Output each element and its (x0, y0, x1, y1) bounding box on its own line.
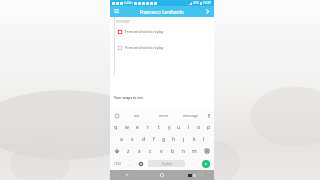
button[interactable]: Next (204, 8, 211, 15)
button[interactable]: Voice input (204, 110, 214, 121)
staticText: a (120, 136, 123, 143)
button[interactable]: s (127, 133, 138, 145)
staticText: Press and hold to replay (125, 45, 164, 50)
staticText: ?123 (114, 162, 121, 166)
button[interactable]: Home (144, 170, 179, 180)
button[interactable]: d (138, 133, 149, 145)
button[interactable]: c (145, 145, 156, 157)
button[interactable]: e (132, 121, 143, 133)
button[interactable]: r (143, 121, 154, 133)
staticText: message (183, 113, 199, 118)
button[interactable]: Back (110, 170, 144, 180)
staticText: s (131, 136, 134, 143)
staticText: p (207, 124, 211, 131)
staticText: . (192, 161, 194, 166)
staticText: 19:39 (197, 173, 205, 177)
button[interactable]: message (177, 110, 204, 121)
button[interactable]: Emoji (110, 110, 124, 121)
staticText: j (183, 136, 185, 143)
staticText: g (162, 136, 166, 143)
button[interactable]: n (178, 145, 189, 157)
button[interactable]: m (189, 145, 200, 157)
staticText: o (197, 124, 201, 131)
button[interactable]: Settings (135, 157, 146, 170)
staticText: i (188, 124, 190, 131)
button[interactable]: Backspace (200, 145, 214, 157)
staticText: u (177, 124, 181, 131)
button[interactable]: t (154, 121, 164, 133)
button[interactable]: w (121, 121, 132, 133)
staticText: 20% (193, 1, 199, 5)
button[interactable]: i (184, 121, 194, 133)
button[interactable]: v (156, 145, 167, 157)
button[interactable]: Space (148, 160, 185, 167)
staticText: d (142, 136, 146, 143)
button[interactable]: Comma (125, 157, 135, 170)
staticText: , (129, 161, 131, 166)
staticText: mese (159, 113, 169, 118)
staticText: h (172, 136, 176, 143)
button[interactable]: l (199, 133, 209, 145)
staticText: b (171, 148, 175, 155)
button[interactable]: k (189, 133, 199, 145)
staticText: me (134, 113, 140, 118)
button[interactable]: Press and hold to replay (118, 28, 210, 35)
button[interactable]: u (174, 121, 184, 133)
staticText: l (203, 136, 205, 143)
button[interactable]: mese (150, 110, 177, 121)
button[interactable]: Recents (188, 174, 192, 177)
staticText: c (149, 148, 152, 155)
staticText: Your snaps to me: (114, 95, 144, 100)
button[interactable]: a (116, 133, 127, 145)
staticText: English (162, 162, 172, 166)
button[interactable]: y (164, 121, 174, 133)
button[interactable]: ?123 (110, 157, 125, 170)
staticText: x (138, 148, 141, 155)
staticText: YESTERDAY (116, 20, 130, 24)
button[interactable]: Press and hold to replay (118, 44, 210, 51)
button[interactable]: x (134, 145, 145, 157)
staticText: m (192, 148, 197, 155)
staticText: e (136, 124, 139, 131)
staticText: k (193, 136, 196, 143)
button[interactable]: p (204, 121, 214, 133)
staticText: n (182, 148, 186, 155)
button[interactable]: q (110, 121, 121, 133)
staticText: w (125, 124, 129, 131)
staticText: 19:39 (203, 1, 212, 5)
staticText: v (160, 148, 163, 155)
button[interactable]: b (167, 145, 178, 157)
button[interactable]: g (159, 133, 169, 145)
button[interactable]: o (194, 121, 204, 133)
button[interactable]: f (149, 133, 159, 145)
button[interactable]: h (169, 133, 179, 145)
staticText: q (114, 124, 118, 131)
button[interactable]: Shift (110, 145, 123, 157)
button[interactable]: j (179, 133, 189, 145)
button[interactable]: Send (202, 160, 210, 168)
button[interactable]: me (124, 110, 150, 121)
staticText: y (168, 124, 171, 131)
staticText: z (127, 148, 130, 155)
staticText: t (158, 124, 160, 131)
staticText: Press and hold to replay (125, 29, 164, 34)
staticText: Francesco Lombardo (140, 9, 184, 15)
staticText: r (147, 124, 150, 131)
staticText: 4.4K/s (124, 1, 133, 5)
button[interactable]: z (123, 145, 134, 157)
button[interactable]: Menu (113, 8, 120, 15)
staticText: f (153, 136, 155, 143)
button[interactable]: Francesco Lombardo (110, 6, 214, 17)
